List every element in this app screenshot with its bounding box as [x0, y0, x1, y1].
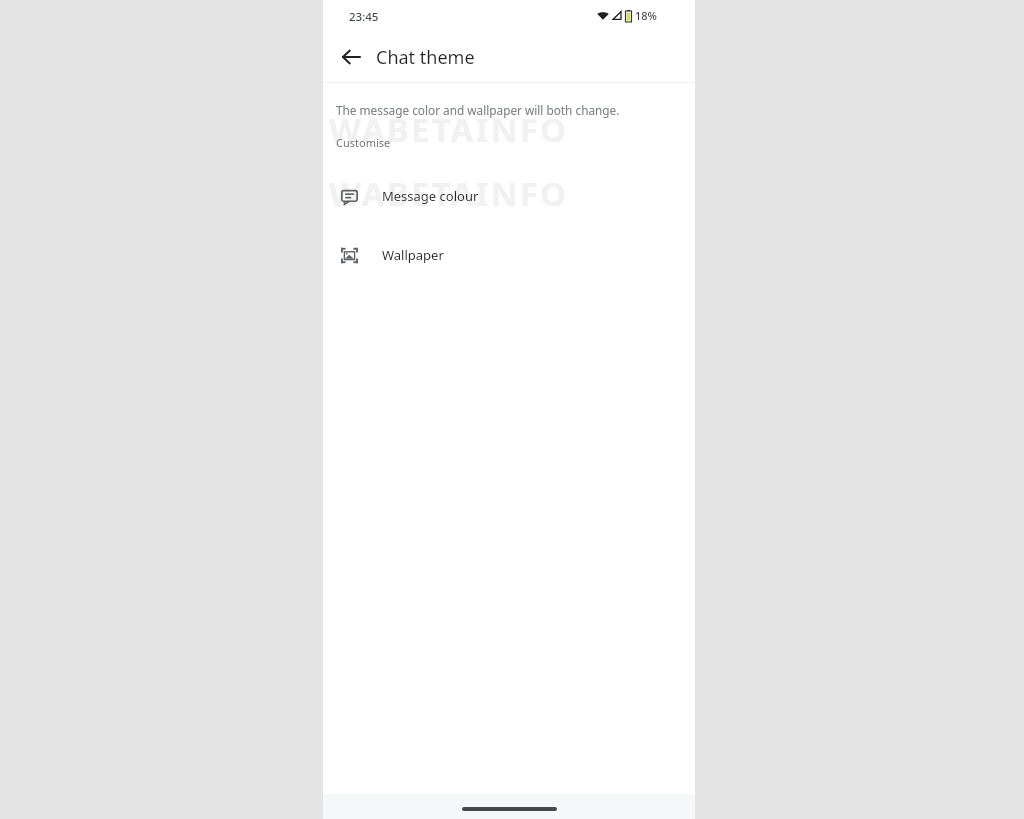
button[interactable]: Wallpaper — [323, 225, 695, 284]
button[interactable]: Back — [332, 38, 370, 76]
staticText: 23:45 — [349, 9, 379, 25]
staticText: Customise — [336, 135, 391, 150]
staticText: WABETAINFO — [329, 107, 569, 152]
button[interactable]: Message colour — [323, 166, 695, 225]
staticText: WABETAINFO — [329, 171, 569, 216]
staticText: 18% — [635, 8, 657, 23]
staticText: The message color and wallpaper will bot… — [336, 102, 620, 118]
staticText: Wallpaper — [382, 246, 444, 264]
staticText: Chat theme — [376, 45, 475, 70]
staticText: Message colour — [382, 187, 479, 205]
